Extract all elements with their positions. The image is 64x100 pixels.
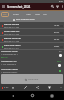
staticText: 2024-06-01 14:02 xyxy=(4,26,20,29)
staticText: 9:41 xyxy=(59,0,63,3)
staticText: Mechanism OK xyxy=(1,60,17,63)
button[interactable]: 3 sel xyxy=(4,86,9,89)
button[interactable]: Recent apps xyxy=(45,91,59,100)
button[interactable]: Navigate up xyxy=(1,3,6,10)
staticText: Rev 18 xyxy=(1,56,8,59)
button[interactable]: Share xyxy=(34,84,40,91)
staticText: INFO sync done xyxy=(4,44,21,47)
button[interactable]: Filter xyxy=(55,3,60,10)
button[interactable]: 30 fps xyxy=(12,12,19,17)
staticText: Checksum verify xyxy=(1,68,18,71)
button[interactable]: Screenshot_2024 xyxy=(7,5,31,9)
button[interactable]: Search xyxy=(50,3,55,10)
staticText: > mkvmerge 82.1 xyxy=(1,53,19,56)
staticText: 8.01K xyxy=(54,31,59,34)
button[interactable]: INFO sync done xyxy=(0,43,64,50)
staticText: 1080 xyxy=(26,13,31,16)
staticText: DEC xyxy=(3,13,7,16)
staticText: Type here xyxy=(28,78,39,81)
staticText: WARN http svc xyxy=(4,30,20,33)
button[interactable]: ERROR net.log xyxy=(0,22,64,29)
button[interactable]: More options xyxy=(60,3,64,10)
staticText: AAC xyxy=(43,13,47,16)
button[interactable]: WARN http svc xyxy=(0,29,64,36)
staticText: > TLS unwrap 0 xyxy=(1,63,16,66)
button[interactable]: Delete xyxy=(10,84,15,91)
staticText: auto xyxy=(57,60,62,63)
staticText: ERROR net.log xyxy=(4,23,19,26)
button[interactable]: Toggle container xyxy=(59,54,62,57)
button[interactable]: Edit xyxy=(22,84,28,91)
staticText: H264 xyxy=(35,13,40,16)
staticText: 2024-06-01 14:05 xyxy=(4,33,20,36)
button[interactable]: ERROR cache db xyxy=(0,36,64,43)
staticText: 2024-06-01 14:11 xyxy=(4,47,20,50)
button[interactable]: Type here xyxy=(1,74,63,84)
button[interactable]: Save xyxy=(46,84,52,91)
button[interactable]: Overflow xyxy=(58,84,63,91)
button[interactable]: AAC xyxy=(42,12,48,17)
staticText: ERROR cache db xyxy=(4,37,21,40)
staticText: 13.2K xyxy=(54,24,59,27)
button[interactable]: 1080 xyxy=(25,12,31,17)
staticText: 2024-06-01 14:09 xyxy=(4,40,20,43)
staticText: task analysis layer xyxy=(16,18,35,21)
staticText: on xyxy=(59,50,62,53)
button[interactable]: Toggle mechanism xyxy=(58,64,61,67)
button[interactable]: DEC xyxy=(1,12,9,17)
staticText: 30 fps xyxy=(13,13,19,16)
staticText: 4.80K xyxy=(54,45,59,48)
button[interactable]: task analysis layer xyxy=(0,17,64,22)
staticText: > finished status xyxy=(1,71,18,74)
button[interactable]: Back xyxy=(6,91,20,100)
staticText: Container name xyxy=(1,50,18,53)
button[interactable]: H264 xyxy=(34,12,40,17)
staticText: 22.4K xyxy=(54,38,59,41)
button[interactable]: Home xyxy=(25,91,39,100)
